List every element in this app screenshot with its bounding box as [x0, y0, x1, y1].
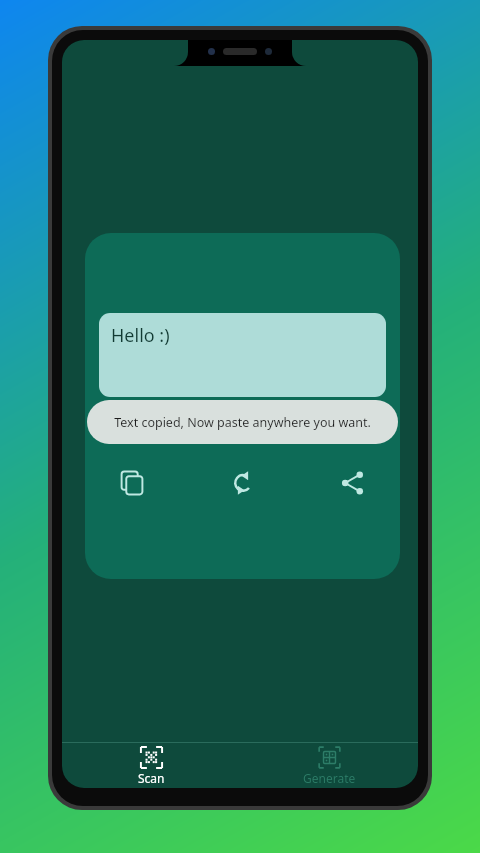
button[interactable]: Generate: [240, 746, 418, 786]
staticText: Generate: [303, 770, 356, 786]
button[interactable]: Scan: [62, 746, 240, 786]
staticText: Text copied, Now paste anywhere you want…: [114, 414, 371, 431]
button[interactable]: Share: [332, 462, 374, 504]
staticText: Hello :): [111, 323, 170, 348]
button[interactable]: Refresh: [222, 462, 264, 504]
staticText: Scan: [138, 770, 165, 786]
button[interactable]: Hello :): [99, 313, 386, 397]
button[interactable]: Copy: [111, 462, 153, 504]
